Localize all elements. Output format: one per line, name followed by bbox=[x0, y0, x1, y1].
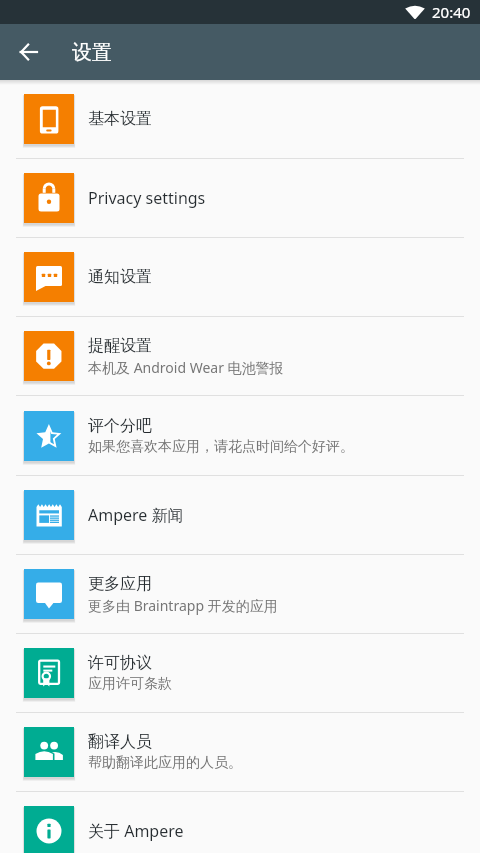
button[interactable]: 关于 Ampere bbox=[0, 792, 480, 853]
button[interactable]: 基本设置 bbox=[0, 80, 480, 158]
staticText: 基本设置 bbox=[88, 109, 152, 129]
staticText: 设置 bbox=[72, 40, 112, 65]
staticText: Privacy settings bbox=[88, 187, 206, 209]
button[interactable]: 翻译人员 bbox=[0, 713, 480, 791]
button[interactable]: Ampere 新闻 bbox=[0, 476, 480, 554]
staticText: 帮助翻译此应用的人员。 bbox=[88, 754, 242, 772]
button[interactable]: Privacy settings bbox=[0, 159, 480, 237]
staticText: 更多应用 bbox=[88, 574, 152, 594]
staticText: 提醒设置 bbox=[88, 336, 152, 356]
staticText: 关于 Ampere bbox=[88, 820, 184, 842]
staticText: 通知设置 bbox=[88, 267, 152, 287]
staticText: Ampere 新闻 bbox=[88, 504, 184, 526]
staticText: 更多由 Braintrapp 开发的应用 bbox=[88, 596, 278, 615]
staticText: 评个分吧 bbox=[88, 416, 152, 436]
button[interactable]: 许可协议 bbox=[0, 634, 480, 712]
button[interactable]: 更多应用 bbox=[0, 555, 480, 633]
staticText: 20:40 bbox=[432, 2, 471, 22]
button[interactable]: 提醒设置 bbox=[0, 317, 480, 395]
staticText: 本机及 Android Wear 电池警报 bbox=[88, 358, 284, 377]
staticText: 应用许可条款 bbox=[88, 675, 172, 693]
staticText: 翻译人员 bbox=[88, 732, 152, 752]
button[interactable]: Back bbox=[8, 32, 48, 72]
button[interactable]: 评个分吧 bbox=[0, 396, 480, 475]
staticText: 如果您喜欢本应用，请花点时间给个好评。 bbox=[88, 438, 354, 456]
staticText: 许可协议 bbox=[88, 653, 152, 673]
button[interactable]: 通知设置 bbox=[0, 238, 480, 316]
